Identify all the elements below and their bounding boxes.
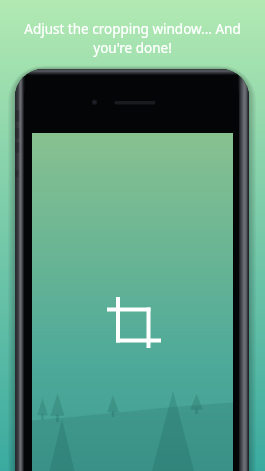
staticText: Adjust the cropping window... And you're… <box>14 20 251 56</box>
